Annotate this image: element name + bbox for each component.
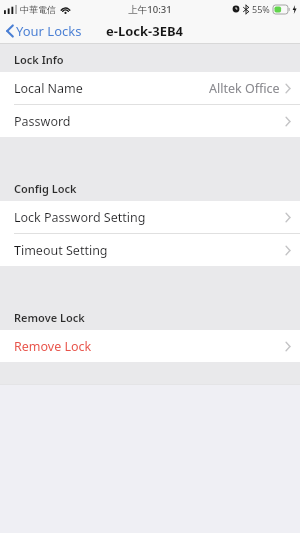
button[interactable]: Lock Password Setting xyxy=(0,201,300,233)
staticText: Lock Password Setting xyxy=(14,209,146,226)
staticText: Lock Info xyxy=(14,52,64,67)
staticText: Timeout Setting xyxy=(14,242,108,259)
staticText: Password xyxy=(14,113,71,130)
staticText: Your Locks xyxy=(16,22,82,40)
staticText: Alltek Office xyxy=(209,80,280,97)
staticText: 中華電信 xyxy=(20,4,56,15)
staticText: 上午10:31 xyxy=(128,3,172,16)
button[interactable]: Remove Lock xyxy=(0,330,300,362)
button[interactable]: Password xyxy=(0,105,300,137)
staticText: Local Name xyxy=(14,80,83,97)
staticText: Remove Lock xyxy=(14,338,92,355)
staticText: e-Lock-3EB4 xyxy=(106,22,184,40)
button[interactable]: Local Name xyxy=(0,72,300,104)
staticText: 55% xyxy=(252,3,270,15)
button[interactable]: Your Locks xyxy=(0,19,90,43)
staticText: Remove Lock xyxy=(14,310,85,325)
staticText: Config Lock xyxy=(14,181,77,196)
button[interactable]: Timeout Setting xyxy=(0,234,300,266)
